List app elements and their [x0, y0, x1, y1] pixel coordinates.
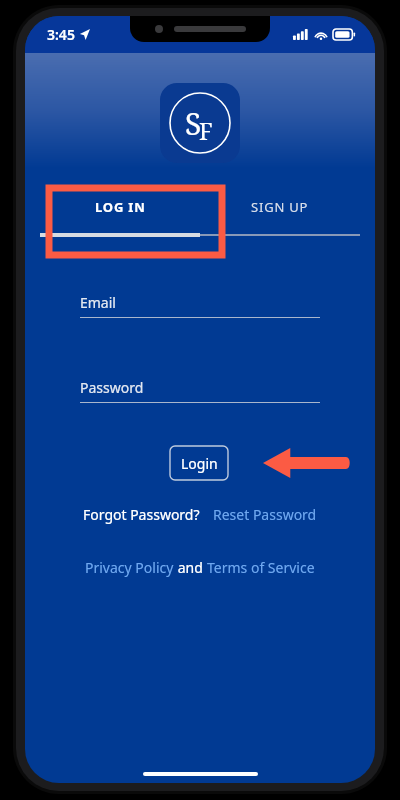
button[interactable]: Reset Password [213, 505, 317, 524]
staticText: SIGN UP [251, 198, 309, 216]
button[interactable]: Email [80, 293, 320, 318]
button[interactable]: Password [80, 378, 320, 403]
staticText: Privacy Policy [85, 558, 174, 577]
button[interactable]: SIGN UP [200, 189, 360, 225]
staticText: Email [80, 293, 116, 312]
staticText: Terms of Service [207, 558, 315, 577]
staticText: Forgot Password? [83, 505, 200, 524]
staticText: 3:45 [47, 25, 75, 44]
staticText: Login [181, 454, 218, 473]
staticText: Password [80, 378, 144, 397]
staticText: and [174, 558, 207, 577]
button[interactable]: Privacy Policy [85, 558, 174, 577]
button[interactable]: LOG IN [40, 189, 200, 225]
button[interactable]: Login [170, 446, 228, 480]
staticText: LOG IN [95, 198, 146, 216]
staticText: S [185, 103, 202, 144]
button[interactable]: Terms of Service [207, 558, 315, 577]
staticText: F [199, 115, 213, 146]
staticText: Reset Password [213, 505, 317, 524]
